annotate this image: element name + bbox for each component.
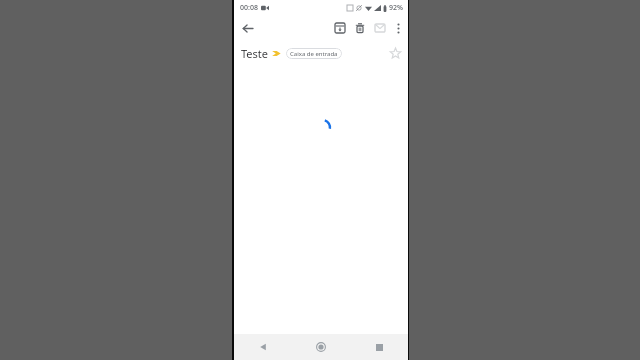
- button[interactable]: Back: [234, 334, 292, 360]
- staticText: Caixa de entrada: [290, 50, 338, 58]
- button[interactable]: Mark unread: [370, 18, 390, 38]
- staticText: 92%: [389, 3, 403, 13]
- button[interactable]: More options: [390, 20, 407, 37]
- button[interactable]: Important: [272, 49, 281, 58]
- button[interactable]: Caixa de entrada: [286, 48, 342, 59]
- button[interactable]: Archive: [330, 18, 350, 38]
- staticText: 00:08: [240, 3, 258, 13]
- button[interactable]: Back: [237, 18, 257, 38]
- button[interactable]: Recents: [350, 334, 408, 360]
- button[interactable]: Home: [292, 334, 350, 360]
- button[interactable]: Star: [386, 44, 404, 62]
- button[interactable]: Delete: [350, 18, 370, 38]
- staticText: Teste: [241, 46, 268, 61]
